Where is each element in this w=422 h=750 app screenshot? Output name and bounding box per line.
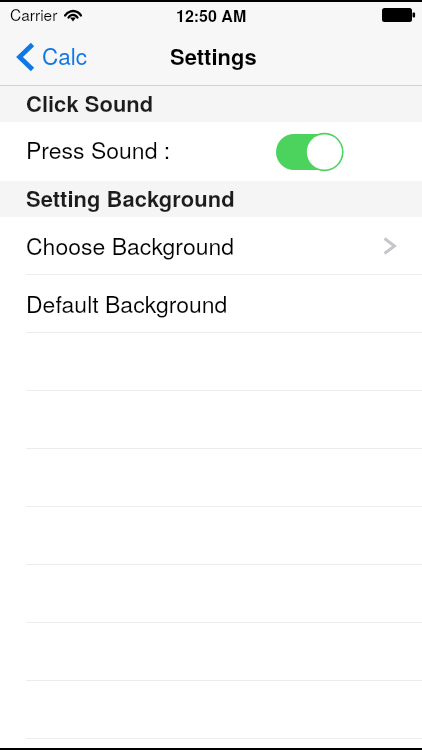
button[interactable]: Back to Calc <box>0 26 98 86</box>
button[interactable]: Press Sound : <box>0 122 422 181</box>
other: Open Choose Background <box>383 237 396 255</box>
button[interactable]: Default Background <box>0 275 422 333</box>
staticText: Setting Background <box>26 182 235 214</box>
staticText: Choose Background <box>26 229 235 262</box>
staticText: Settings <box>170 40 257 72</box>
button[interactable]: Choose Background <box>0 217 422 275</box>
staticText: 12:50 AM <box>176 4 247 27</box>
staticText: Press Sound : <box>26 133 171 166</box>
button[interactable]: Press Sound, on <box>273 131 346 173</box>
staticText: Default Background <box>26 287 228 320</box>
staticText: Calc <box>42 39 88 71</box>
other: Wi-Fi signal <box>62 4 84 24</box>
staticText: Carrier <box>10 3 58 25</box>
other: Battery full <box>382 8 415 22</box>
staticText: Click Sound <box>26 87 154 119</box>
